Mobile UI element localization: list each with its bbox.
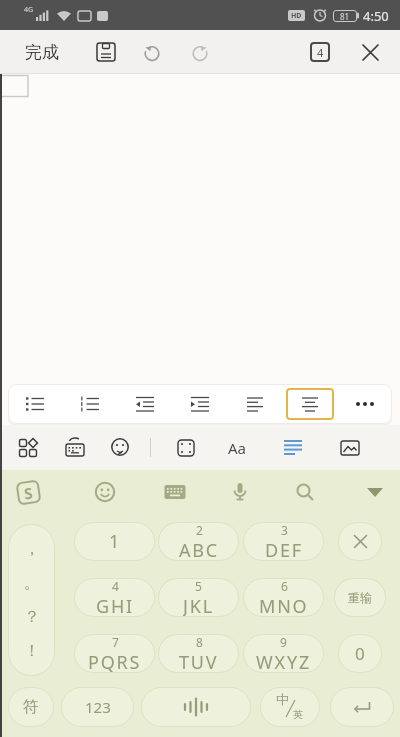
staticText: DEF <box>265 538 303 561</box>
staticText: 2 <box>196 522 203 538</box>
button[interactable]: 2 <box>158 522 239 561</box>
staticText: 英 <box>293 708 303 721</box>
button[interactable]: 9 <box>243 634 324 673</box>
button[interactable]: Aa <box>217 428 257 468</box>
button[interactable] <box>172 384 227 424</box>
button[interactable] <box>227 384 282 424</box>
staticText: WXYZ <box>256 650 311 673</box>
staticText: S <box>23 482 34 504</box>
staticText: MNO <box>259 594 309 617</box>
staticText: HD <box>291 11 302 21</box>
button[interactable]: 符 <box>8 687 54 727</box>
button[interactable] <box>100 428 140 468</box>
button[interactable]: 3 <box>243 522 324 561</box>
staticText: 0 <box>355 642 365 665</box>
button[interactable] <box>338 522 382 561</box>
button[interactable] <box>330 687 394 727</box>
staticText: TUV <box>179 650 219 673</box>
button[interactable]: 123 <box>61 687 134 727</box>
button[interactable]: 5 <box>158 578 239 617</box>
staticText: 81 <box>340 11 350 22</box>
staticText: 中 <box>276 691 289 707</box>
staticText: 4 <box>112 578 119 594</box>
staticText: 9 <box>280 634 287 650</box>
button[interactable]: 1 <box>74 522 155 561</box>
staticText: 5 <box>195 578 202 594</box>
staticText: 4:50 <box>363 7 389 25</box>
staticText: ABC <box>179 538 219 561</box>
staticText: PQRS <box>88 650 142 673</box>
staticText: 4G <box>24 5 34 15</box>
button[interactable]: 中 <box>260 687 320 727</box>
staticText: ？ <box>24 607 40 627</box>
button[interactable] <box>285 472 325 512</box>
staticText: 。 <box>24 573 40 593</box>
button[interactable] <box>350 32 390 72</box>
button[interactable] <box>180 32 220 72</box>
button[interactable]: 4 <box>300 32 340 72</box>
button[interactable]: 4 <box>74 578 155 617</box>
staticText: 123 <box>85 697 111 717</box>
staticText: JKL <box>183 594 214 617</box>
staticText: 4 <box>317 45 324 60</box>
staticText: 3 <box>281 522 288 538</box>
button[interactable]: 6 <box>243 578 324 617</box>
button[interactable] <box>117 384 172 424</box>
button[interactable] <box>85 472 125 512</box>
staticText: 1 <box>109 529 120 554</box>
staticText: 重输 <box>348 590 372 605</box>
button[interactable]: 7 <box>74 634 155 673</box>
button[interactable]: S <box>8 472 48 512</box>
staticText: 符 <box>23 697 39 717</box>
button[interactable]: 0 <box>338 634 382 673</box>
button[interactable] <box>8 428 48 468</box>
button[interactable] <box>8 384 62 424</box>
staticText: ， <box>24 539 40 559</box>
staticText: 8 <box>196 634 203 650</box>
button[interactable]: 重输 <box>334 578 386 617</box>
button[interactable] <box>155 472 195 512</box>
staticText: Aa <box>228 438 247 458</box>
button[interactable]: 8 <box>158 634 239 673</box>
staticText: 完成 <box>25 42 59 63</box>
button[interactable] <box>166 428 206 468</box>
button[interactable] <box>355 472 395 512</box>
staticText: GHI <box>96 594 134 617</box>
button[interactable] <box>132 32 172 72</box>
button[interactable] <box>141 687 251 727</box>
staticText: ！ <box>24 641 40 661</box>
button[interactable] <box>330 428 370 468</box>
button[interactable] <box>86 32 126 72</box>
button[interactable]: 完成 <box>12 30 72 74</box>
staticText: 6 <box>281 578 288 594</box>
button[interactable] <box>282 384 337 424</box>
button[interactable]: ， <box>8 524 55 676</box>
button[interactable] <box>220 472 260 512</box>
button[interactable] <box>337 384 392 424</box>
staticText: 7 <box>112 634 119 650</box>
button[interactable] <box>273 428 313 468</box>
button[interactable] <box>62 384 117 424</box>
button[interactable] <box>55 428 95 468</box>
